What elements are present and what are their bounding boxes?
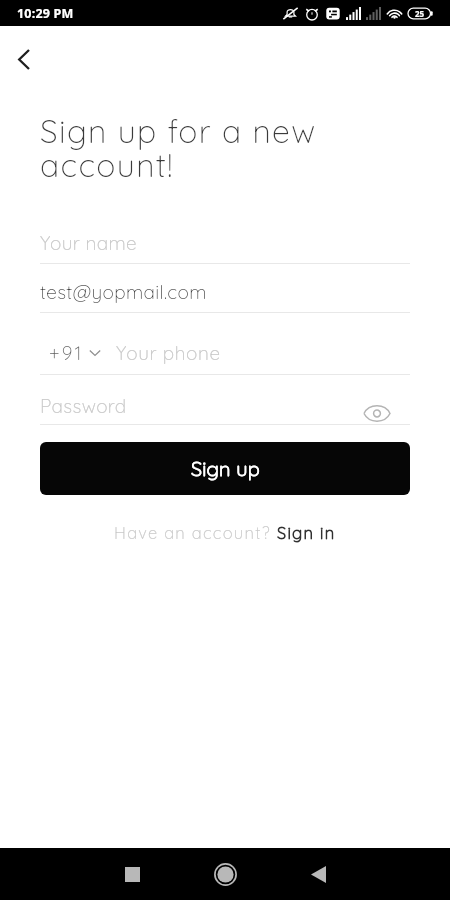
- button[interactable]: Sign up: [40, 442, 410, 495]
- button[interactable]: Sign in: [277, 522, 336, 543]
- button[interactable]: Country code +91: [49, 341, 101, 365]
- staticText: 25: [415, 8, 425, 19]
- staticText: test@yopmail.com: [40, 280, 207, 304]
- button[interactable]: Back: [5, 40, 43, 78]
- staticText: Have an account?: [114, 522, 277, 543]
- button[interactable]: Show password: [360, 400, 394, 426]
- staticText: Sign in: [277, 522, 336, 543]
- staticText: 10:29 PM: [17, 5, 74, 22]
- staticText: Sign up for a new account!: [40, 111, 360, 185]
- staticText: +91: [49, 341, 84, 365]
- button[interactable]: Recent apps: [108, 850, 156, 898]
- staticText: Your name: [40, 231, 138, 255]
- staticText: Sign up: [191, 456, 260, 481]
- staticText: Sign up: [191, 456, 260, 481]
- button[interactable]: Home: [201, 850, 249, 898]
- staticText: Sign in: [277, 522, 336, 543]
- staticText: Password: [40, 394, 360, 418]
- staticText: Your phone: [116, 341, 221, 365]
- button[interactable]: Back: [294, 850, 342, 898]
